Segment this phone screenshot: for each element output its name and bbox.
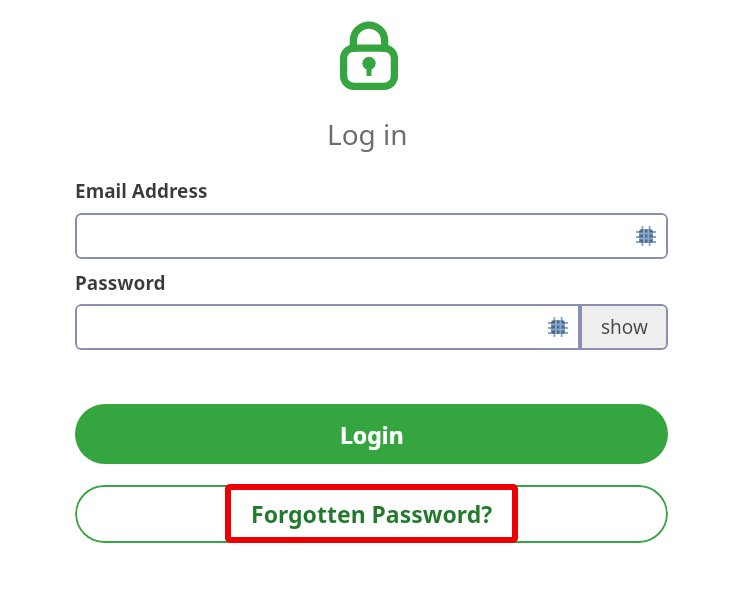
staticText: show [601,314,648,340]
other: Autofill [636,226,656,246]
staticText: Email Address [75,178,208,204]
other: Autofill [548,317,568,337]
button[interactable]: Autofill [75,213,668,259]
button[interactable]: Login [75,404,668,464]
staticText: Login [340,419,404,450]
button[interactable]: Autofill [75,304,580,350]
button[interactable]: show [580,304,668,350]
staticText: Forgotten Password? [251,498,493,529]
staticText: Log in [327,115,408,153]
button[interactable]: Forgotten Password? [75,485,668,543]
staticText: Password [75,270,166,296]
